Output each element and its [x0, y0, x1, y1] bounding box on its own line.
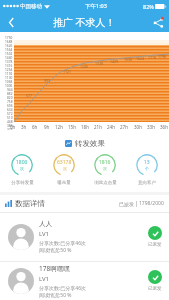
staticText: 36h: [160, 124, 168, 130]
staticText: 33h: [147, 124, 155, 130]
staticText: 1338: [95, 61, 104, 66]
staticText: 数据详情: [15, 199, 45, 208]
staticText: 1800: [16, 159, 28, 166]
button[interactable]: 1800: [2, 154, 42, 186]
staticText: 27h: [120, 124, 128, 130]
staticText: 324: [7, 128, 13, 130]
staticText: 1316: [5, 64, 13, 68]
staticText: 1750: [5, 36, 13, 40]
staticText: 18h: [81, 124, 89, 130]
staticText: 1068: [5, 80, 13, 84]
staticText: 3h: [21, 124, 27, 130]
staticText: 386: [7, 124, 13, 128]
staticText: 1530: [124, 57, 133, 62]
button[interactable]: Back: [0, 12, 22, 32]
staticText: 分享转发量: [11, 180, 34, 186]
staticText: 12h: [55, 124, 63, 130]
staticText: 中国移动: [20, 3, 42, 10]
staticText: 下午1:03: [85, 2, 107, 10]
staticText: LV1: [39, 275, 50, 283]
staticText: 9h: [44, 124, 50, 130]
staticText: 推广 不求人！: [53, 15, 116, 29]
staticText: 15h: [68, 124, 76, 130]
staticText: 24h: [107, 124, 115, 130]
staticText: 903: [44, 78, 51, 83]
staticText: 浏览点击量: [94, 180, 117, 186]
staticText: 696: [7, 104, 13, 108]
staticText: 1624: [136, 56, 145, 61]
staticText: 已派发: [148, 242, 162, 248]
staticText: 1816: [99, 159, 111, 166]
staticText: 1502: [5, 52, 13, 56]
staticText: 1429: [110, 59, 119, 64]
staticText: 已派发: [148, 286, 162, 292]
staticText: 意向客户: [138, 180, 156, 186]
staticText: 30h: [134, 124, 142, 130]
staticText: 1130: [5, 76, 13, 80]
staticText: 1121: [63, 69, 72, 74]
button[interactable]: Share: [147, 12, 169, 32]
staticText: 1192: [5, 72, 13, 76]
staticText: 82%: [143, 3, 154, 10]
staticText: 1564: [5, 48, 13, 52]
staticText: 1006: [5, 84, 13, 88]
staticText: 63178: [57, 159, 72, 166]
staticText: 510: [7, 116, 13, 120]
staticText: LV1: [39, 230, 50, 238]
staticText: 已派发: [119, 201, 134, 207]
staticText: 1718: [148, 55, 157, 60]
staticText: 曝光量: [57, 180, 71, 186]
button[interactable]: 178啊嘿嘿: [0, 262, 169, 300]
staticText: 944: [7, 88, 13, 92]
staticText: 次: [20, 166, 24, 171]
staticText: 1688: [5, 40, 13, 44]
staticText: 次: [63, 166, 67, 171]
staticText: 分享次数:已分享46次: [39, 285, 87, 292]
staticText: 882: [7, 92, 13, 96]
staticText: 1378: [5, 60, 13, 64]
staticText: 0h: [10, 124, 16, 130]
staticText: 转发效果: [75, 139, 105, 148]
staticText: 13: [144, 159, 150, 166]
staticText: 1254: [5, 68, 13, 72]
staticText: 21h: [94, 124, 102, 130]
staticText: 阅读情况:50 %: [39, 247, 72, 254]
staticText: 1246: [80, 64, 89, 69]
staticText: 1440: [5, 56, 13, 60]
staticText: 阅读情况:50 %: [39, 292, 72, 299]
staticText: 758: [7, 100, 13, 104]
staticText: 1798/2000: [139, 200, 164, 207]
staticText: 1798: [158, 54, 167, 59]
staticText: 634: [7, 108, 13, 112]
staticText: 577: [26, 93, 33, 98]
staticText: 人人: [39, 220, 52, 228]
button[interactable]: 63178: [44, 154, 84, 186]
button[interactable]: 1816: [85, 154, 125, 186]
staticText: 1626: [5, 44, 13, 48]
staticText: 6h: [32, 124, 38, 130]
staticText: 820: [7, 96, 13, 100]
button[interactable]: 13: [127, 154, 167, 186]
staticText: 572: [7, 112, 13, 116]
staticText: 分享次数:已分享46次: [39, 240, 87, 247]
staticText: 个: [145, 166, 149, 171]
staticText: 448: [7, 120, 13, 124]
button[interactable]: 人人: [0, 213, 169, 261]
staticText: 178啊嘿嘿: [39, 264, 70, 273]
staticText: 次: [103, 166, 107, 171]
